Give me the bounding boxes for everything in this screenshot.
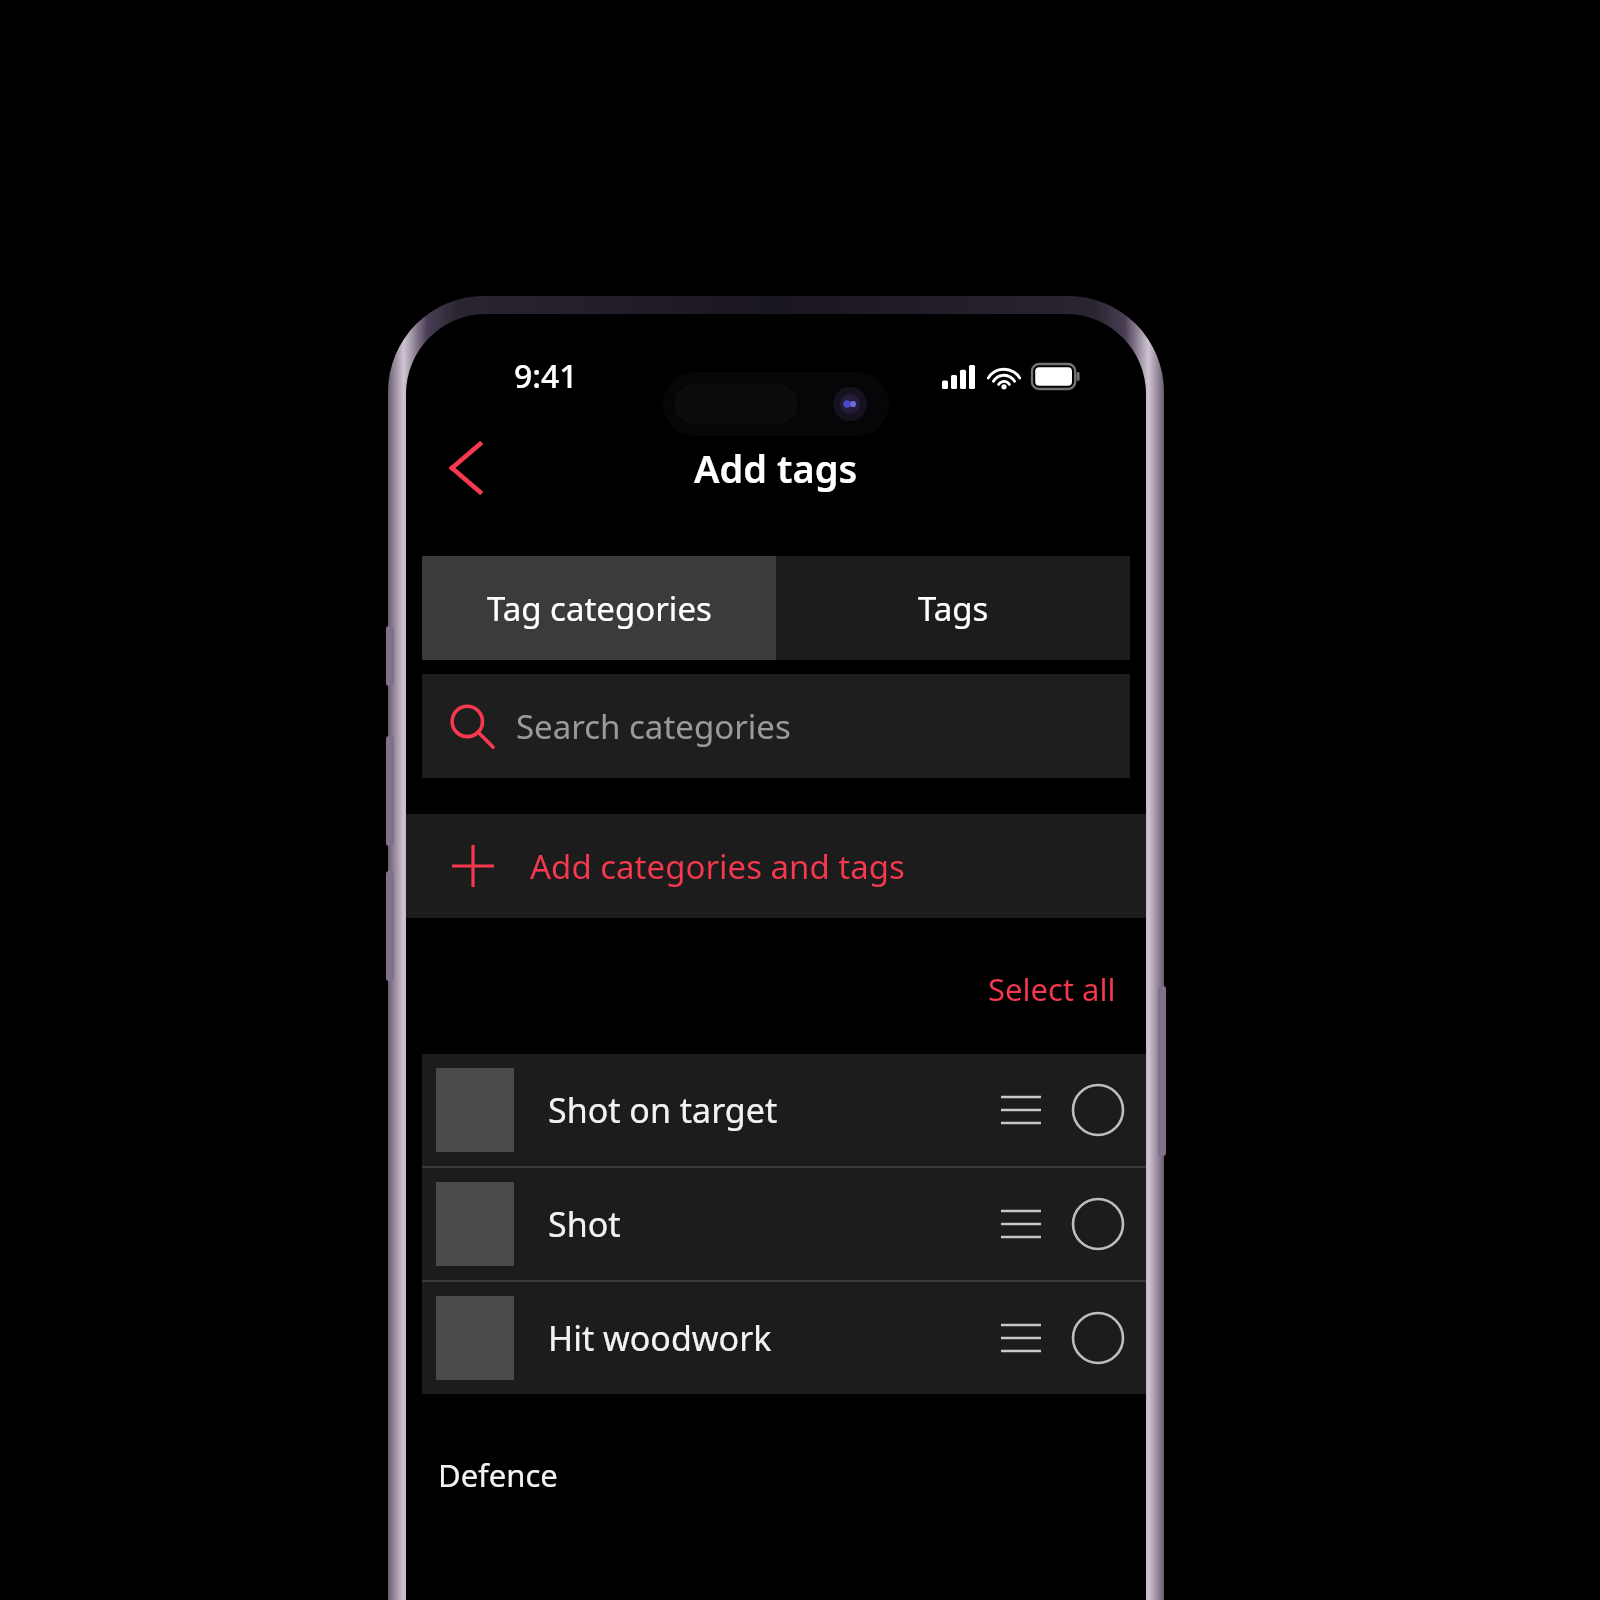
button[interactable]: Select Hit woodwork [1066, 1306, 1130, 1370]
button[interactable]: Select all [988, 968, 1116, 1010]
staticText: Defence [438, 1454, 558, 1496]
staticText: Shot [548, 1201, 992, 1247]
button[interactable]: Tags [776, 556, 1130, 660]
staticText: Tag categories [487, 586, 712, 631]
staticText: Add tags [694, 442, 858, 494]
staticText: Hit woodwork [548, 1315, 992, 1361]
button[interactable]: Select Shot on target [1066, 1078, 1130, 1142]
staticText: Tags [918, 586, 989, 631]
button[interactable]: Search categories [422, 674, 1130, 778]
staticText: Shot on target [548, 1087, 992, 1133]
button[interactable]: Tag categories [422, 556, 776, 660]
staticText: Search categories [516, 704, 791, 749]
button[interactable]: Shot [422, 1168, 1146, 1280]
button[interactable]: Shot on target [422, 1054, 1146, 1166]
button[interactable]: Hit woodwork [422, 1282, 1146, 1394]
button[interactable]: Add categories and tags [406, 814, 1146, 918]
button[interactable]: Reorder [992, 1195, 1050, 1253]
button[interactable]: Select Shot [1066, 1192, 1130, 1256]
button[interactable]: Back [428, 430, 504, 506]
button[interactable]: Reorder [992, 1081, 1050, 1139]
button[interactable]: Reorder [992, 1309, 1050, 1367]
staticText: Add categories and tags [530, 844, 905, 889]
staticText: 9:41 [514, 354, 578, 398]
